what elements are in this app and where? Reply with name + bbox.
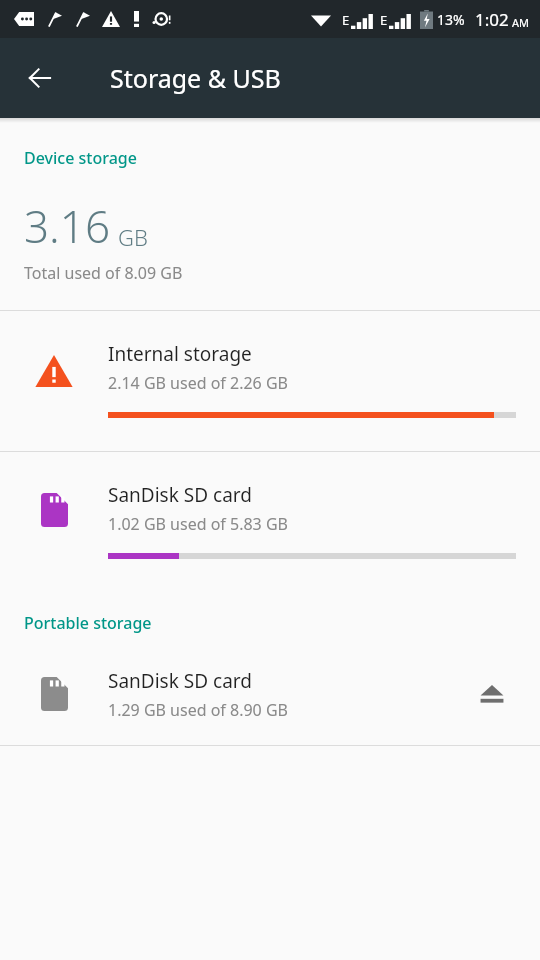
- staticText: Device storage: [24, 147, 137, 169]
- staticText: Portable storage: [24, 612, 152, 634]
- staticText: SanDisk SD card: [108, 482, 252, 508]
- staticText: E: [342, 11, 350, 29]
- staticText: Internal storage: [108, 341, 252, 367]
- staticText: E: [380, 11, 388, 29]
- staticText: AM: [512, 15, 530, 30]
- button[interactable]: SanDisk SD card: [0, 452, 540, 588]
- staticText: 2.14 GB used of 2.26 GB: [108, 372, 288, 394]
- staticText: Total used of 8.09 GB: [24, 262, 183, 284]
- button[interactable]: SanDisk SD card: [0, 656, 540, 732]
- staticText: 3.16: [24, 196, 111, 256]
- staticText: GB: [118, 222, 148, 252]
- button[interactable]: Internal storage: [0, 311, 540, 451]
- button[interactable]: Eject SD card: [468, 670, 516, 718]
- staticText: 1.29 GB used of 8.90 GB: [108, 699, 288, 721]
- staticText: 1:02: [475, 8, 509, 31]
- button[interactable]: Navigate up: [12, 50, 68, 106]
- staticText: 13%: [437, 10, 465, 29]
- staticText: SanDisk SD card: [108, 668, 252, 694]
- staticText: 1.02 GB used of 5.83 GB: [108, 513, 288, 535]
- staticText: Storage & USB: [110, 61, 281, 95]
